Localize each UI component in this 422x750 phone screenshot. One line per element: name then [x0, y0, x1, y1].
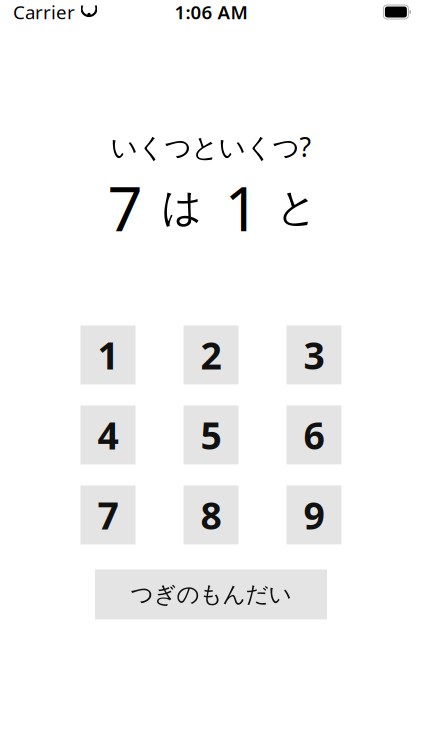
staticText: 8: [200, 490, 221, 540]
staticText: 5: [200, 410, 221, 460]
button[interactable]: 7: [80, 485, 135, 544]
staticText: 9: [303, 490, 324, 540]
staticText: と: [276, 183, 317, 232]
button[interactable]: 3: [286, 325, 341, 384]
button[interactable]: 8: [183, 485, 238, 544]
button[interactable]: 2: [183, 325, 238, 384]
staticText: つぎのもんだい: [130, 580, 291, 608]
staticText: 1: [224, 167, 259, 248]
staticText: 2: [200, 330, 221, 380]
button[interactable]: 1: [80, 325, 135, 384]
button[interactable]: つぎのもんだい: [95, 569, 327, 619]
staticText: 7: [107, 167, 142, 248]
staticText: 1:06 AM: [174, 0, 247, 24]
button[interactable]: 9: [286, 485, 341, 544]
staticText: 4: [97, 410, 118, 460]
staticText: 1: [97, 330, 118, 380]
button[interactable]: 5: [183, 405, 238, 464]
staticText: 7: [97, 490, 118, 540]
button[interactable]: 6: [286, 405, 341, 464]
button[interactable]: 4: [80, 405, 135, 464]
staticText: Carrier: [13, 0, 75, 24]
staticText: は: [161, 183, 202, 232]
staticText: 3: [303, 330, 324, 380]
staticText: いくつといくつ?: [110, 129, 311, 164]
staticText: 6: [303, 410, 324, 460]
